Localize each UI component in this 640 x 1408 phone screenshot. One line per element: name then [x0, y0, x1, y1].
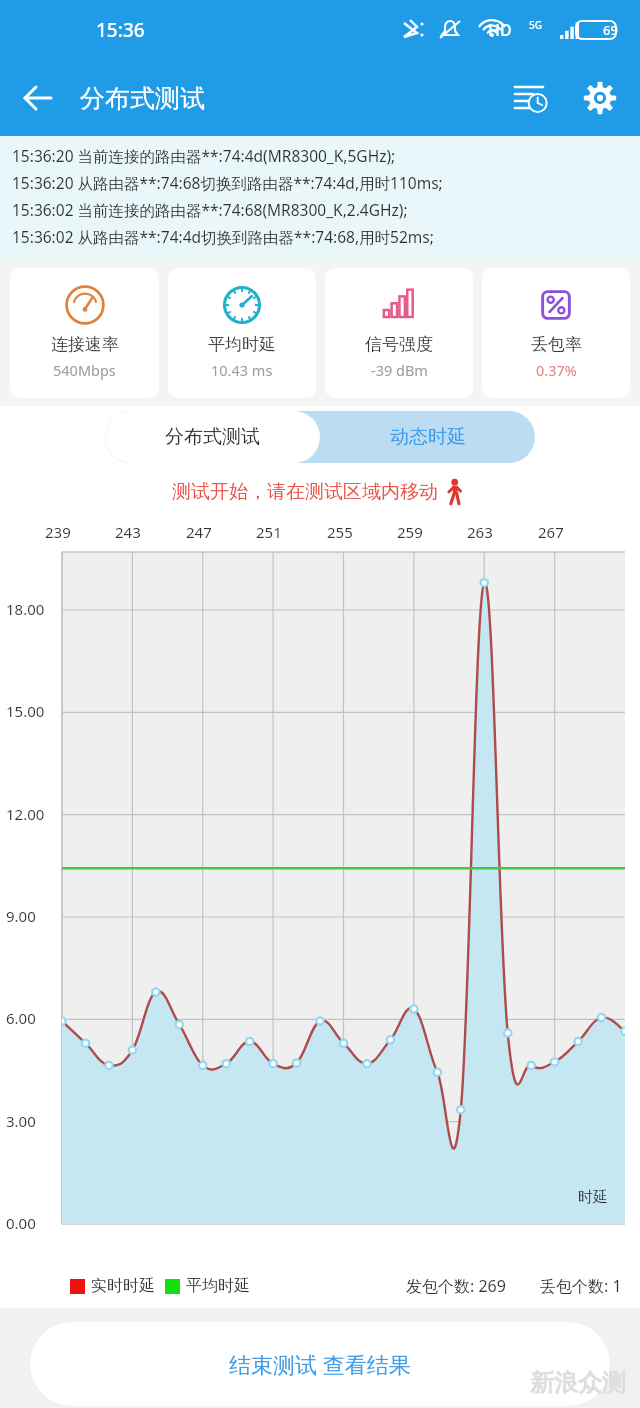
button[interactable]: Back [12, 72, 64, 124]
button[interactable]: 丢包率 [482, 268, 630, 398]
staticText: 263 [467, 522, 493, 542]
staticText: 实时时延 [91, 1276, 155, 1296]
staticText: 15:36:20 当前连接的路由器**:74:4d(MR8300_K,5GHz)… [12, 145, 396, 166]
staticText: 69 [603, 21, 618, 39]
staticText: 267 [538, 522, 564, 542]
button[interactable]: 动态时延 [320, 411, 535, 463]
staticText: 平均时延 [186, 1276, 250, 1296]
button[interactable]: 平均时延 [168, 268, 316, 398]
staticText: 发包个数: 269 [406, 1275, 506, 1297]
staticText: 测试开始，请在测试区域内移动 [172, 480, 438, 504]
staticText: 结束测试 查看结果 [229, 1349, 411, 1379]
staticText: 540Mbps [53, 360, 116, 380]
staticText: 10.43 ms [211, 360, 273, 380]
staticText: HD [488, 19, 512, 41]
staticText: 15:36:02 当前连接的路由器**:74:68(MR8300_K,2.4GH… [12, 199, 408, 220]
staticText: 连接速率 [51, 334, 119, 355]
staticText: 0.37% [536, 360, 577, 380]
staticText: 251 [256, 522, 282, 542]
button[interactable]: 连接速率 [10, 268, 159, 398]
staticText: 15:36:20 从路由器**:74:68切换到路由器**:74:4d,用时11… [12, 172, 443, 193]
staticText: 6.00 [6, 1008, 36, 1028]
staticText: 时延 [578, 1188, 608, 1207]
staticText: 259 [397, 522, 423, 542]
staticText: 15:36:02 从路由器**:74:4d切换到路由器**:74:68,用时52… [12, 226, 434, 247]
staticText: 15.00 [6, 701, 45, 721]
staticText: 247 [186, 522, 212, 542]
staticText: 动态时延 [390, 425, 466, 449]
staticText: 丢包个数: 1 [540, 1275, 622, 1297]
staticText: 0.00 [6, 1213, 36, 1233]
staticText: 239 [45, 522, 71, 542]
staticText: 15:36 [96, 17, 145, 43]
staticText: 丢包率 [531, 334, 582, 355]
staticText: 243 [115, 522, 141, 542]
staticText: 255 [327, 522, 353, 542]
staticText: 9.00 [6, 906, 36, 926]
staticText: 信号强度 [365, 334, 433, 355]
button[interactable]: 结束测试 查看结果 [30, 1322, 610, 1406]
staticText: 12.00 [6, 804, 45, 824]
button[interactable]: 信号强度 [325, 268, 473, 398]
button[interactable]: 分布式测试 [105, 411, 320, 463]
staticText: 5G [529, 18, 542, 32]
staticText: 平均时延 [208, 334, 276, 355]
button[interactable]: Settings [572, 70, 628, 126]
staticText: -39 dBm [371, 360, 428, 380]
staticText: 分布式测试 [165, 425, 260, 449]
button[interactable]: History [502, 70, 558, 126]
staticText: 分布式测试 [80, 83, 205, 114]
staticText: 3.00 [6, 1111, 36, 1131]
staticText: 新浪众测 [530, 1368, 626, 1398]
staticText: 18.00 [6, 599, 45, 619]
